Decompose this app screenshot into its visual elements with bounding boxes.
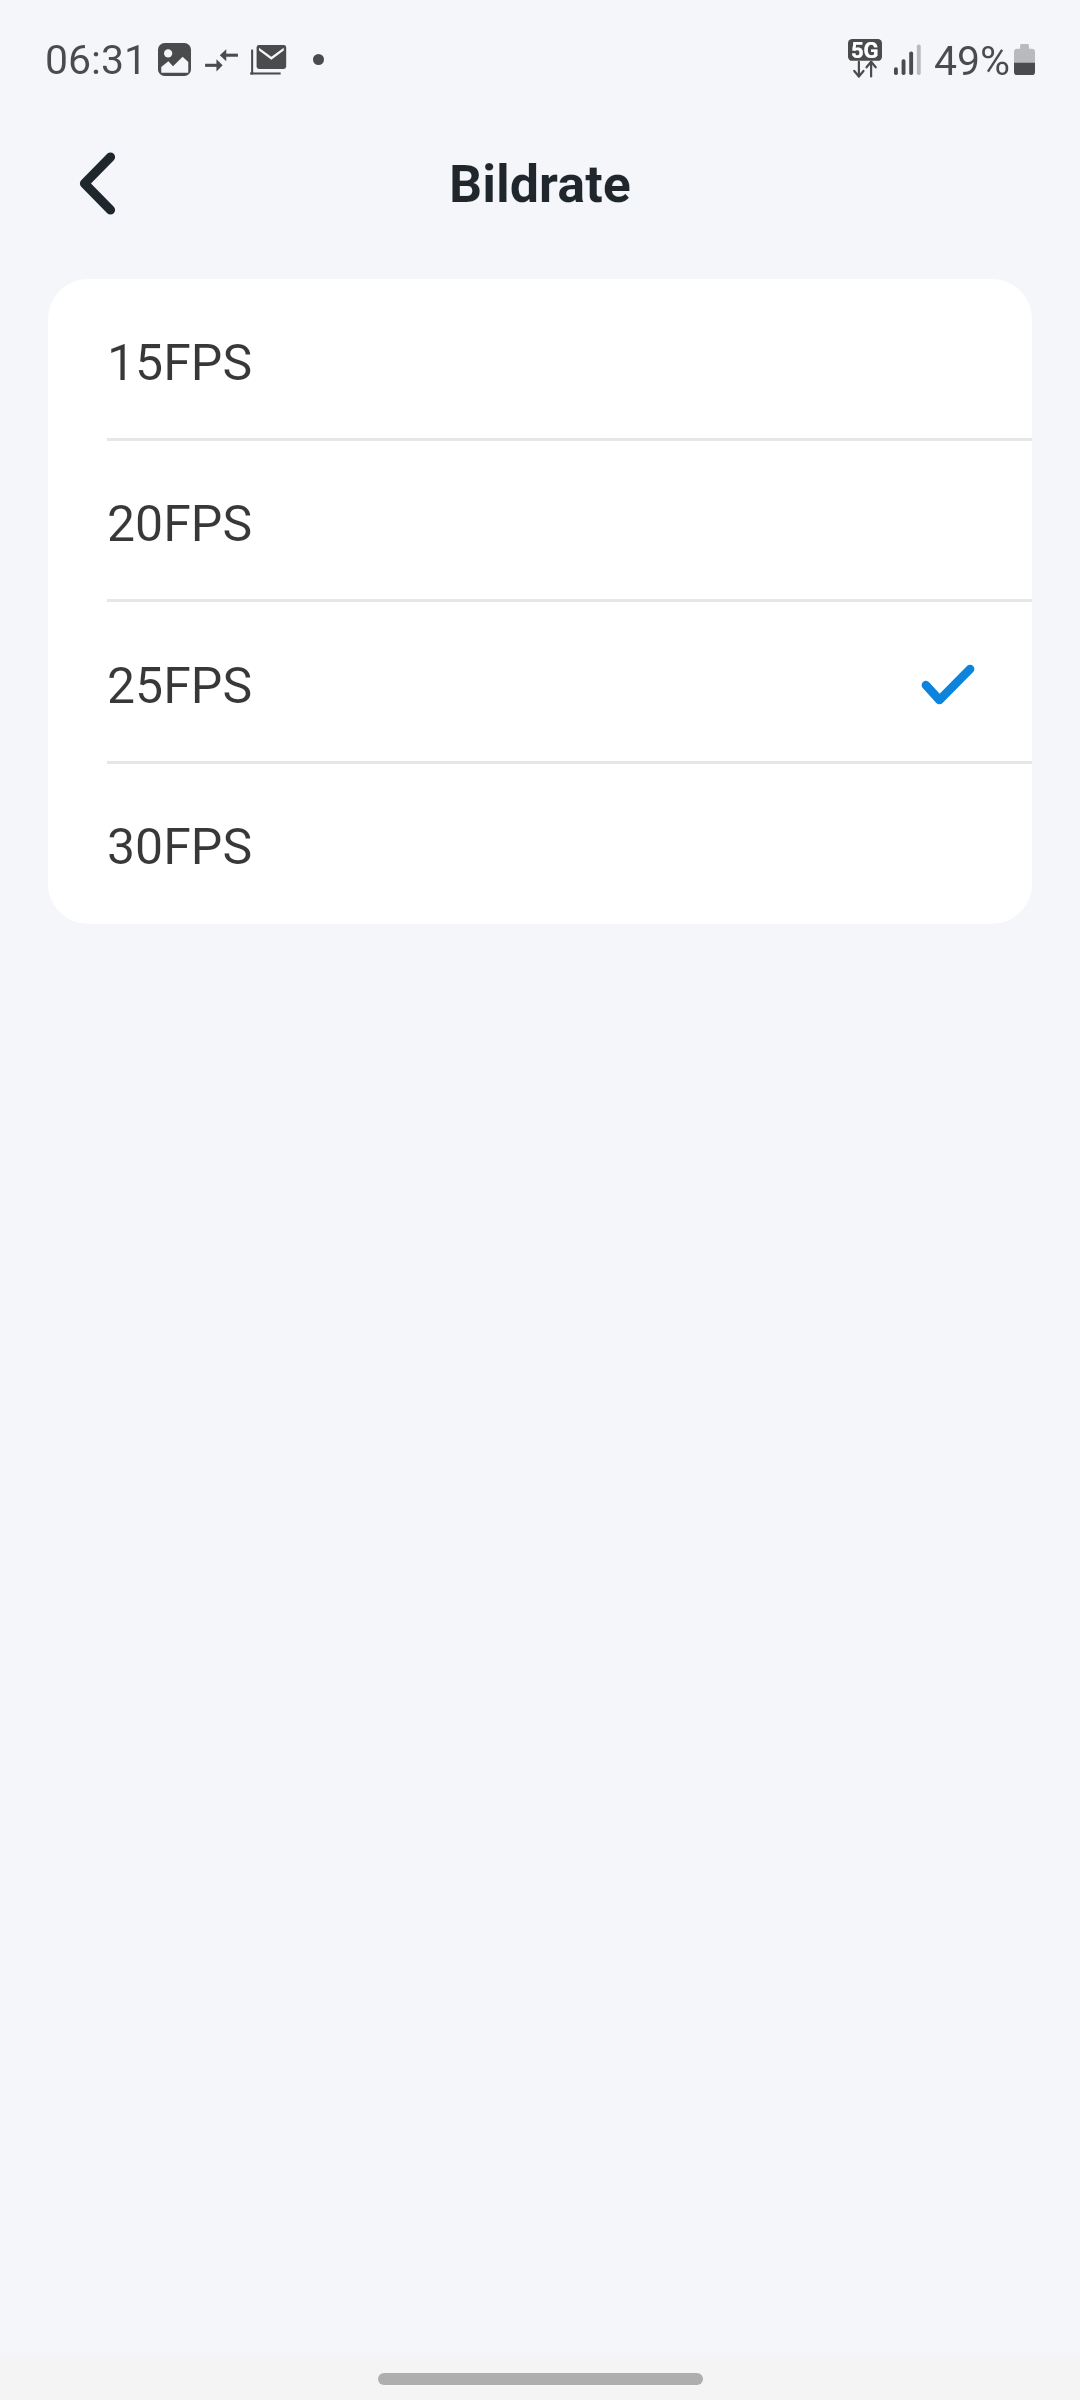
staticText: 25FPS: [107, 657, 253, 716]
button[interactable]: Back: [49, 135, 145, 231]
button[interactable]: 25FPS: [48, 602, 1032, 763]
staticText: 49%: [934, 37, 1011, 85]
staticText: 20FPS: [107, 495, 253, 554]
staticText: Bildrate: [449, 154, 631, 215]
staticText: 5G: [851, 38, 879, 64]
staticText: 06:31: [45, 36, 148, 84]
button[interactable]: 20FPS: [48, 440, 1032, 601]
staticText: 15FPS: [107, 334, 253, 393]
other: Selected: [925, 668, 971, 701]
button[interactable]: 15FPS: [48, 279, 1032, 440]
staticText: 30FPS: [107, 818, 253, 877]
button[interactable]: 30FPS: [48, 763, 1032, 924]
